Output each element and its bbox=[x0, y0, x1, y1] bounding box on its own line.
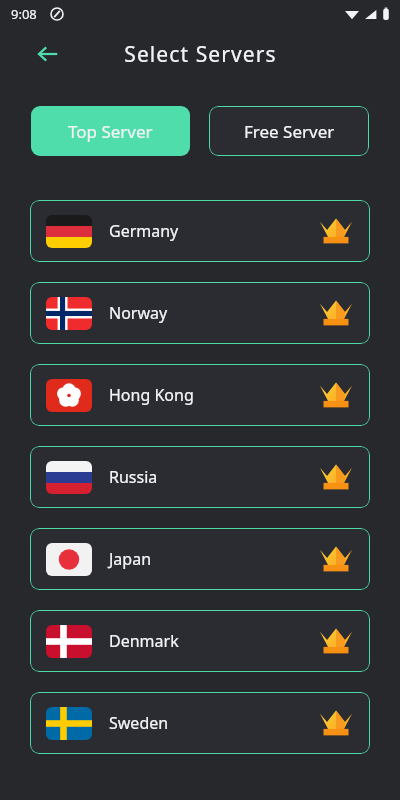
button[interactable]: Denmark bbox=[30, 610, 370, 672]
button[interactable]: Free Server bbox=[209, 106, 369, 156]
staticText: Japan bbox=[109, 548, 152, 570]
button[interactable]: Top Server bbox=[31, 106, 190, 156]
button[interactable]: Japan bbox=[30, 528, 370, 590]
staticText: Select Servers bbox=[124, 40, 277, 69]
button[interactable]: Back bbox=[28, 34, 68, 74]
button[interactable]: Russia bbox=[30, 446, 370, 508]
staticText: Denmark bbox=[109, 630, 179, 652]
button[interactable]: Sweden bbox=[30, 692, 370, 754]
button[interactable]: Hong Kong bbox=[30, 364, 370, 426]
staticText: Russia bbox=[109, 466, 158, 488]
staticText: Germany bbox=[109, 220, 179, 242]
staticText: Free Server bbox=[244, 120, 335, 143]
staticText: 9:08 bbox=[11, 5, 37, 23]
staticText: Top Server bbox=[68, 120, 153, 143]
staticText: Sweden bbox=[109, 712, 169, 734]
staticText: Hong Kong bbox=[109, 384, 194, 406]
button[interactable]: Norway bbox=[30, 282, 370, 344]
button[interactable]: Germany bbox=[30, 200, 370, 262]
staticText: Norway bbox=[109, 302, 168, 324]
